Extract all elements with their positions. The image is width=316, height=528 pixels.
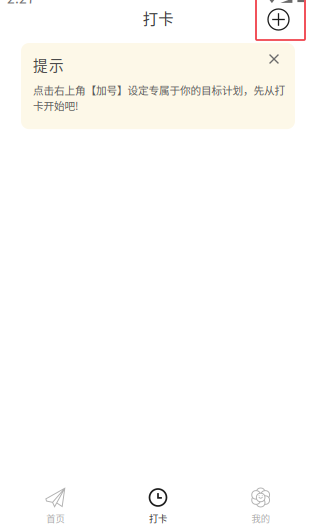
staticText: 提示 — [33, 54, 64, 75]
staticText: 我的 — [252, 511, 270, 525]
staticText: 打卡 — [143, 6, 173, 29]
staticText: 打卡 — [149, 511, 167, 525]
staticText: 点击右上角【加号】设定专属于你的目标计划，先从打卡开始吧! — [33, 82, 285, 113]
button[interactable]: Add plan — [261, 5, 295, 36]
button[interactable]: Dismiss tip — [263, 48, 285, 70]
button[interactable]: 我的 — [209, 485, 312, 527]
staticText: 2:27 — [7, 0, 35, 8]
staticText: 首页 — [46, 511, 64, 525]
button[interactable]: 打卡 — [107, 485, 209, 527]
button[interactable]: 首页 — [4, 485, 107, 527]
